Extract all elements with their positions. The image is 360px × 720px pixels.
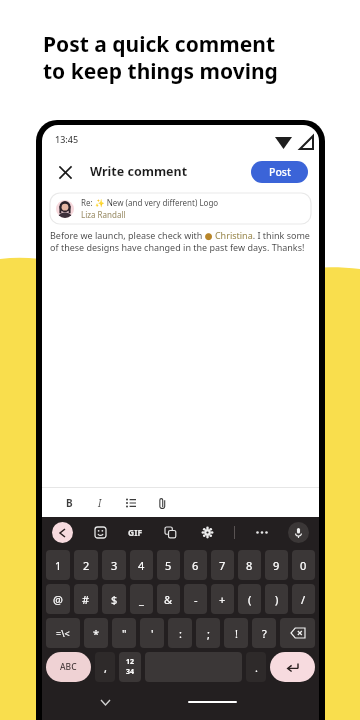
- button[interactable]: (: [238, 584, 261, 614]
- staticText: $: [111, 592, 118, 607]
- button[interactable]: More options: [251, 522, 272, 543]
- button[interactable]: Italic: [89, 492, 111, 514]
- staticText: +: [219, 592, 226, 607]
- button[interactable]: 8: [238, 550, 261, 580]
- button[interactable]: Bold: [58, 492, 80, 514]
- staticText: ,: [104, 660, 107, 675]
- staticText: 7: [219, 558, 226, 573]
- button[interactable]: :: [168, 618, 192, 648]
- staticText: GIF: [128, 527, 143, 539]
- staticText: Re: ✨ New (and very different) Logo: [81, 197, 219, 208]
- staticText: 8: [246, 558, 253, 573]
- button[interactable]: 5: [157, 550, 180, 580]
- button[interactable]: Attach file: [151, 492, 173, 514]
- staticText: &: [164, 592, 173, 607]
- staticText: *: [93, 626, 100, 641]
- staticText: B: [66, 496, 73, 510]
- button[interactable]: 2: [74, 550, 98, 580]
- staticText: 1: [55, 558, 62, 573]
- button[interactable]: GIF: [128, 522, 143, 543]
- button[interactable]: ,: [95, 652, 115, 682]
- button[interactable]: 0: [292, 550, 315, 580]
- staticText: =\<: [56, 627, 70, 639]
- staticText: #: [82, 592, 90, 607]
- staticText: -: [194, 592, 198, 607]
- staticText: 9: [273, 558, 280, 573]
- button[interactable]: 3: [102, 550, 126, 580]
- button[interactable]: ;: [196, 618, 220, 648]
- button[interactable]: Settings: [197, 522, 218, 543]
- staticText: ": [122, 626, 127, 641]
- button[interactable]: ABC: [46, 652, 91, 682]
- button[interactable]: Voice input: [288, 522, 309, 543]
- staticText: ': [151, 626, 154, 641]
- staticText: Post a quick comment to keep things movi…: [43, 30, 278, 85]
- staticText: 34: [126, 667, 135, 677]
- staticText: 3: [111, 558, 118, 573]
- button[interactable]: Post: [251, 161, 308, 183]
- button[interactable]: &: [157, 584, 180, 614]
- button[interactable]: Numbers: [119, 652, 141, 682]
- staticText: 13:45: [55, 133, 79, 145]
- button[interactable]: Enter: [270, 652, 315, 682]
- button[interactable]: #: [74, 584, 98, 614]
- staticText: @: [53, 592, 63, 607]
- button[interactable]: $: [102, 584, 126, 614]
- button[interactable]: ?: [252, 618, 276, 648]
- button[interactable]: ": [112, 618, 136, 648]
- button[interactable]: Stickers: [90, 522, 111, 543]
- button[interactable]: 6: [184, 550, 207, 580]
- button[interactable]: Close: [53, 160, 77, 184]
- button[interactable]: +: [211, 584, 234, 614]
- button[interactable]: 9: [265, 550, 288, 580]
- staticText: Before we launch, please check with ● Ch…: [50, 229, 311, 253]
- button[interactable]: !: [224, 618, 248, 648]
- staticText: ?: [262, 626, 267, 641]
- staticText: .: [255, 660, 258, 675]
- staticText: :: [179, 626, 182, 641]
- staticText: Write comment: [90, 163, 188, 180]
- button[interactable]: _: [130, 584, 153, 614]
- staticText: ABC: [60, 661, 77, 673]
- staticText: 2: [83, 558, 90, 573]
- staticText: 4: [138, 558, 145, 573]
- staticText: 5: [165, 558, 172, 573]
- staticText: /: [301, 592, 306, 607]
- button[interactable]: ): [265, 584, 288, 614]
- button[interactable]: =\<: [46, 618, 80, 648]
- button[interactable]: Re: ✨ New (and very different) Logo: [50, 193, 311, 224]
- button[interactable]: /: [292, 584, 315, 614]
- staticText: ): [275, 592, 279, 607]
- staticText: 0: [300, 558, 307, 573]
- staticText: !: [235, 626, 238, 641]
- button[interactable]: *: [84, 618, 108, 648]
- staticText: 6: [192, 558, 199, 573]
- staticText: Liza Randall: [81, 209, 126, 220]
- staticText: ;: [207, 626, 210, 641]
- staticText: I: [98, 496, 102, 510]
- button[interactable]: Hide keyboard: [94, 691, 116, 713]
- button[interactable]: Backspace: [280, 618, 315, 648]
- staticText: (: [248, 592, 252, 607]
- button[interactable]: @: [46, 584, 70, 614]
- button[interactable]: -: [184, 584, 207, 614]
- button[interactable]: 1: [46, 550, 70, 580]
- button[interactable]: Translate: [160, 522, 181, 543]
- button[interactable]: 7: [211, 550, 234, 580]
- button[interactable]: 4: [130, 550, 153, 580]
- button[interactable]: .: [246, 652, 266, 682]
- staticText: 12: [126, 657, 135, 667]
- staticText: Post: [269, 165, 291, 179]
- staticText: _: [139, 592, 144, 607]
- button[interactable]: ': [140, 618, 164, 648]
- button[interactable]: Bulleted list: [120, 492, 142, 514]
- button[interactable]: Back: [52, 522, 73, 543]
